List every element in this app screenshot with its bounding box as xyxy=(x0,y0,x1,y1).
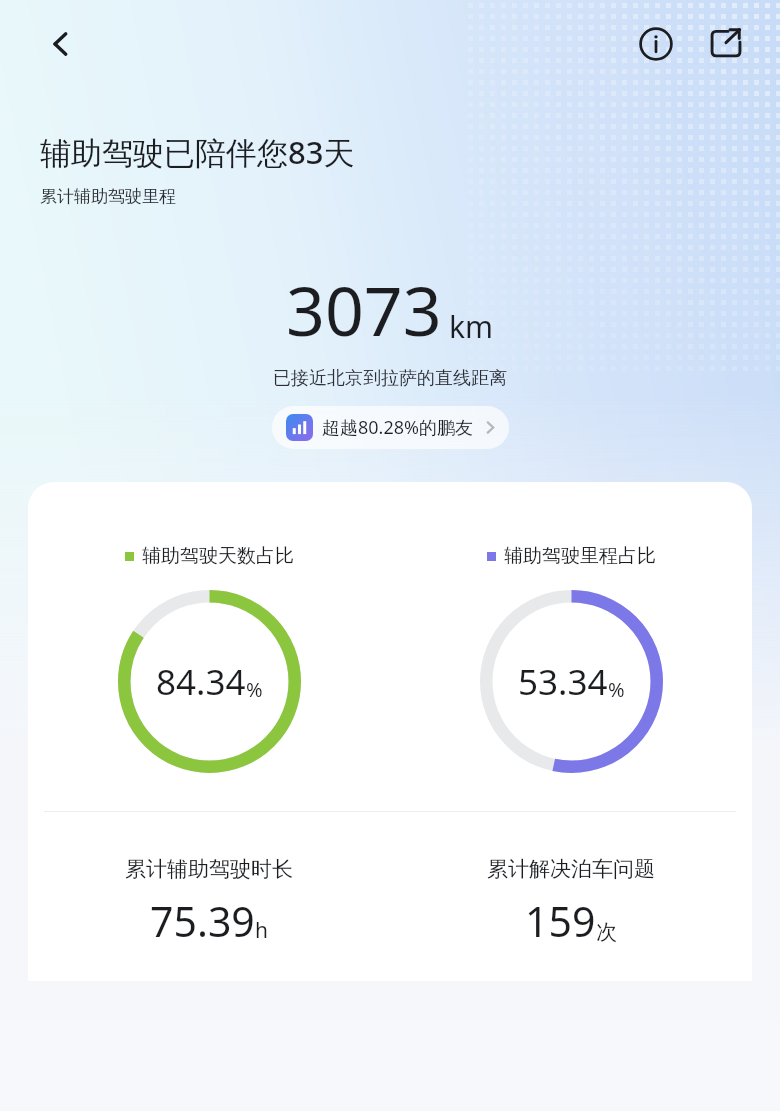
staticText: 累计辅助驾驶时长 xyxy=(125,856,293,882)
button[interactable]: 超越80.28%的鹏友 xyxy=(272,406,509,449)
button[interactable]: Info xyxy=(632,20,680,68)
staticText: 辅助驾驶里程占比 xyxy=(504,544,656,568)
staticText: 75.39 xyxy=(150,893,255,949)
staticText: 辅助驾驶已陪伴您83天 xyxy=(40,131,355,173)
staticText: h xyxy=(255,916,268,945)
staticText: 超越80.28%的鹏友 xyxy=(322,415,473,440)
staticText: km xyxy=(449,306,494,347)
button[interactable]: Share xyxy=(702,20,750,68)
staticText: % xyxy=(608,676,625,703)
staticText: 累计解决泊车问题 xyxy=(487,856,655,882)
staticText: 次 xyxy=(596,919,617,945)
staticText: 84.34 xyxy=(156,658,246,706)
button[interactable]: Back xyxy=(38,21,84,67)
staticText: 累计辅助驾驶里程 xyxy=(40,186,176,207)
staticText: 已接近北京到拉萨的直线距离 xyxy=(273,367,507,390)
staticText: 53.34 xyxy=(518,658,608,706)
staticText: % xyxy=(246,676,263,703)
staticText: 159 xyxy=(525,893,596,949)
staticText: 3073 xyxy=(286,263,442,356)
staticText: 辅助驾驶天数占比 xyxy=(142,544,294,568)
